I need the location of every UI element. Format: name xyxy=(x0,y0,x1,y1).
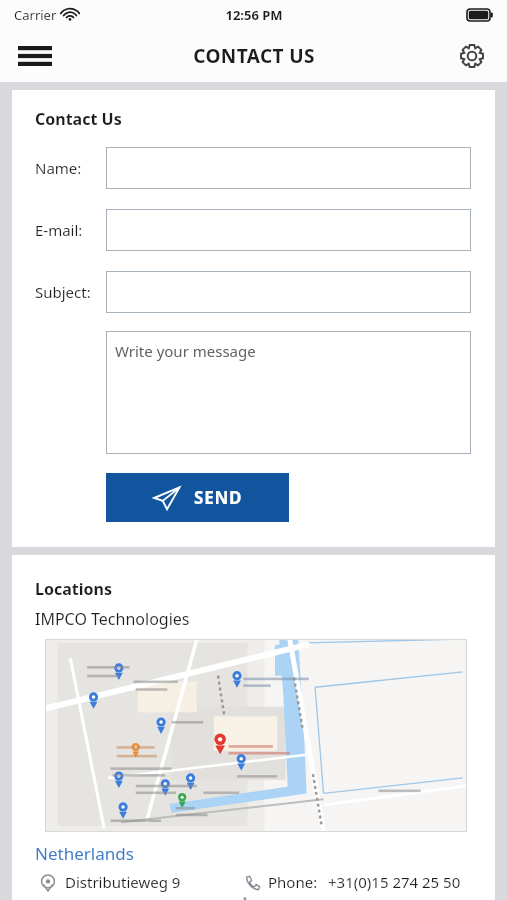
staticText: Contact Us xyxy=(35,108,122,130)
button[interactable] xyxy=(106,209,471,251)
staticText: E-mail: xyxy=(35,220,83,240)
other: Fax xyxy=(244,898,260,900)
staticText: Write your message xyxy=(115,341,256,361)
button[interactable]: Netherlands xyxy=(35,842,134,865)
button[interactable]: Menu xyxy=(12,33,58,79)
button[interactable] xyxy=(106,271,471,313)
button[interactable]: Write your message xyxy=(106,331,471,454)
staticText: Carrier xyxy=(14,6,57,24)
staticText: Phone: xyxy=(268,872,318,892)
staticText: IMPCO Technologies xyxy=(35,608,190,630)
staticText: 12:56 PM xyxy=(225,6,283,24)
staticText: SEND xyxy=(194,486,243,509)
staticText: Name: xyxy=(35,158,82,178)
button[interactable] xyxy=(45,639,467,832)
button[interactable]: Settings xyxy=(449,33,495,79)
other: Phone xyxy=(244,874,260,890)
other: Address xyxy=(40,874,56,892)
button[interactable]: SEND xyxy=(106,473,289,522)
staticText: Locations xyxy=(35,578,112,600)
staticText: Subject: xyxy=(35,282,91,302)
staticText: +31(0)15 274 25 50 xyxy=(328,872,461,892)
staticText: CONTACT US xyxy=(193,43,315,69)
button[interactable] xyxy=(106,147,471,189)
staticText: Distributieweg 9 xyxy=(65,872,181,892)
